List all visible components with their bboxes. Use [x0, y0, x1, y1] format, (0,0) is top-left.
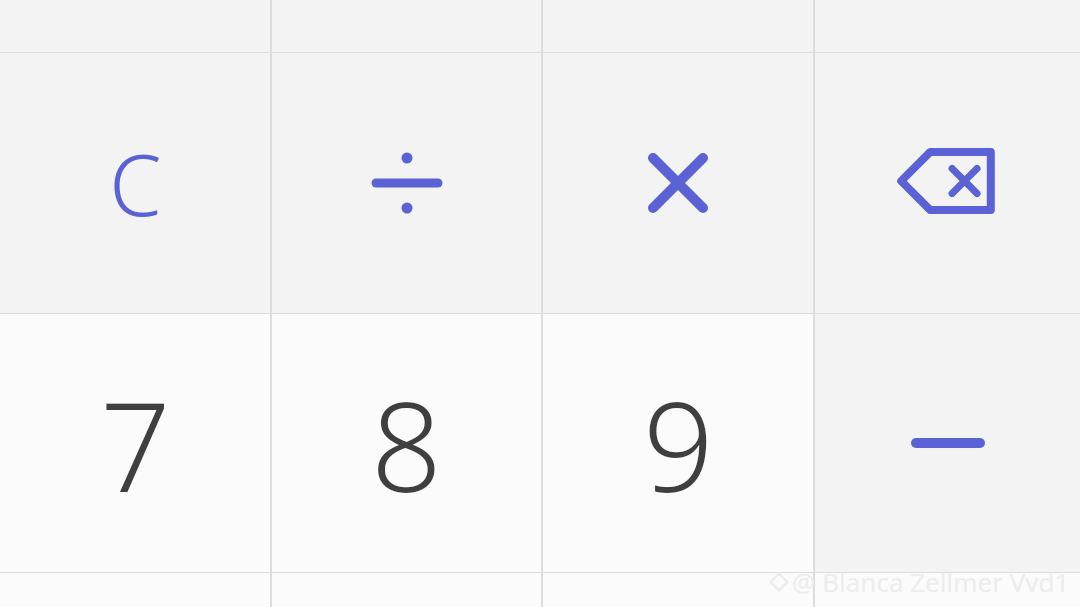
button[interactable]: Minus	[815, 314, 1080, 572]
button[interactable]: 8	[272, 314, 541, 572]
button[interactable]: Plus	[815, 573, 1080, 607]
button[interactable]: Divide	[272, 53, 541, 313]
button[interactable]: 7	[0, 314, 270, 572]
staticText: C	[109, 126, 162, 240]
staticText: @ Blanca Zellmer Vvd1	[792, 564, 1070, 599]
button[interactable]: 9	[543, 314, 813, 572]
button[interactable]: Backspace	[815, 53, 1080, 313]
button[interactable]: Multiply	[543, 53, 813, 313]
staticText: 8	[371, 359, 442, 528]
staticText: 7	[100, 359, 171, 528]
staticText: 9	[643, 359, 714, 528]
button[interactable]: C	[0, 53, 270, 313]
